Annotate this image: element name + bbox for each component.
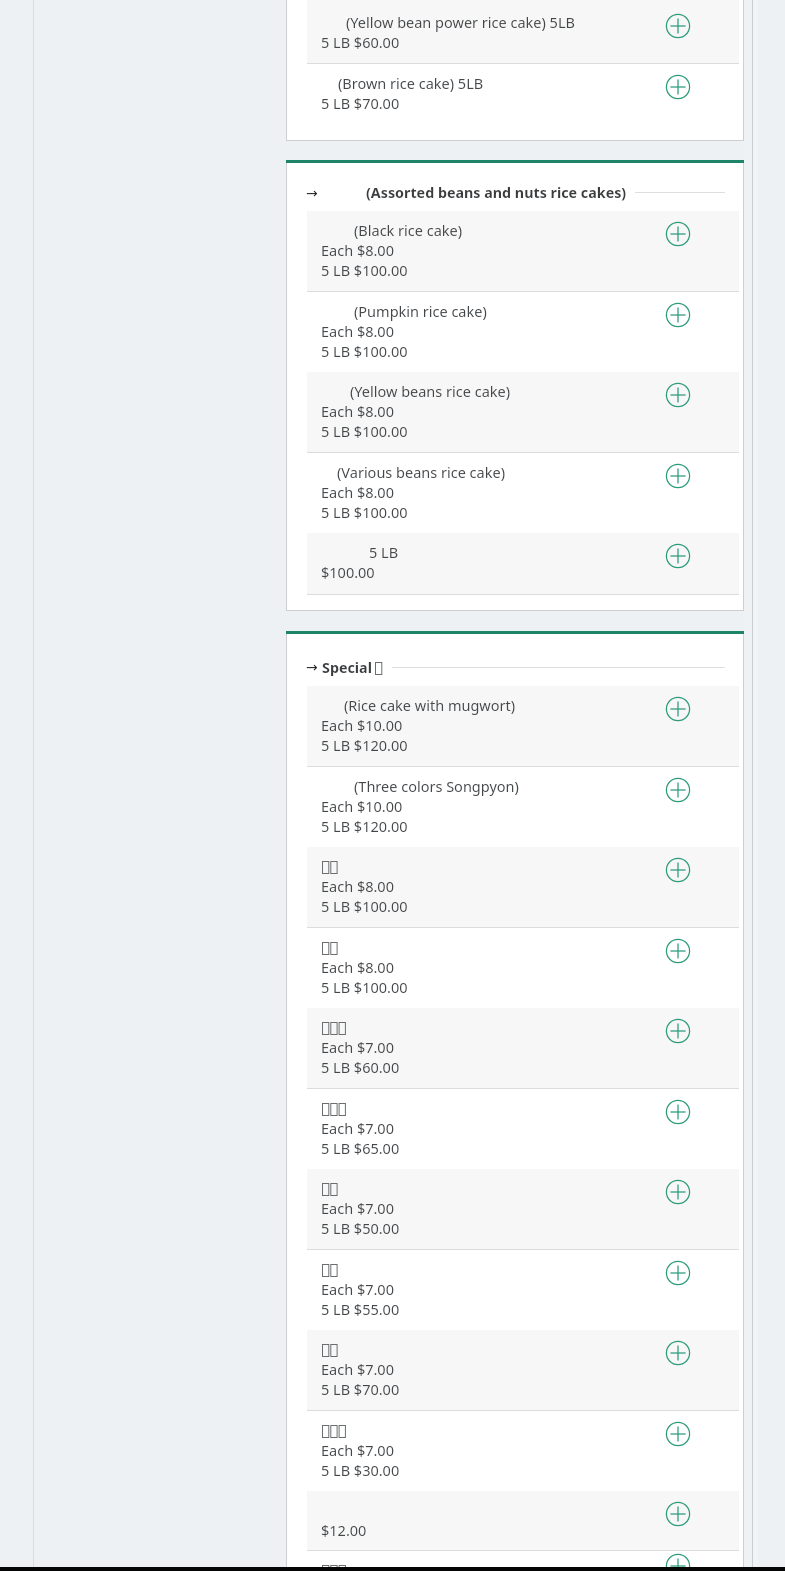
staticText: 5 LB $50.00 [321, 1218, 400, 1238]
staticText: 5 LB $65.00 [321, 1138, 400, 1158]
staticText: 5 LB $100.00 [321, 502, 408, 522]
staticText: Each $7.00 [321, 1359, 394, 1379]
button[interactable]: Each $7.00 [307, 1169, 739, 1249]
staticText: (Assorted beans and nuts rice cakes) [366, 183, 627, 202]
button[interactable]: (Yellow beans rice cake) [307, 372, 739, 452]
staticText: 5 LB [369, 542, 399, 562]
staticText: (Pumpkin rice cake) [354, 301, 487, 321]
staticText: (Yellow bean power rice cake) 5LB [346, 12, 575, 32]
button[interactable]: Each $7.00 [307, 1411, 739, 1491]
staticText: Each $8.00 [321, 482, 394, 502]
staticText: 5 LB $70.00 [321, 93, 400, 113]
button[interactable]: Add to order [665, 13, 691, 39]
staticText: 5 LB $55.00 [321, 1299, 400, 1319]
staticText: (Various beans rice cake) [337, 462, 505, 482]
button[interactable]: Add to order [665, 696, 691, 722]
button[interactable]: Add to order [665, 463, 691, 489]
staticText: Each $7.00 [321, 1118, 394, 1138]
button[interactable]: (Pumpkin rice cake) [307, 292, 739, 372]
staticText: Each $10.00 [321, 715, 403, 735]
button[interactable]: (Rice cake with mugwort) [307, 686, 739, 766]
button[interactable]: Add to order [665, 1561, 691, 1571]
staticText: 5 LB $60.00 [321, 1057, 400, 1077]
staticText: Each $8.00 [321, 876, 394, 896]
button[interactable]: Add to order [665, 1421, 691, 1447]
button[interactable]: 5 LB [307, 533, 739, 594]
staticText: Each $7.00 [321, 1440, 394, 1460]
staticText: → [306, 185, 318, 201]
staticText: 5 LB $100.00 [321, 896, 408, 916]
button[interactable]: (Three colors Songpyon) [307, 767, 739, 847]
button[interactable]: Each $7.00 [307, 1089, 739, 1169]
button[interactable]: → [287, 634, 743, 686]
staticText: 5 LB $100.00 [321, 977, 408, 997]
staticText: (Black rice cake) [354, 220, 463, 240]
staticText: 5 LB $120.00 [321, 816, 408, 836]
staticText: Each $7.00 [321, 1198, 394, 1218]
button[interactable]: Add to order [665, 1260, 691, 1286]
staticText: Each $10.00 [321, 796, 403, 816]
button[interactable]: → [287, 163, 743, 211]
button[interactable]: (Various beans rice cake) [307, 453, 739, 533]
button[interactable]: Add to order [665, 543, 691, 569]
button[interactable]: Add to order [665, 1179, 691, 1205]
button[interactable]: Add to order [665, 777, 691, 803]
button[interactable]: Each $8.00 [307, 928, 739, 1008]
button[interactable]: Add to order [665, 1018, 691, 1044]
staticText: 5 LB $120.00 [321, 735, 408, 755]
staticText: Each $8.00 [321, 957, 394, 977]
button[interactable]: (Black rice cake) [307, 211, 739, 291]
staticText: (Rice cake with mugwort) [344, 695, 516, 715]
staticText: Each $8.00 [321, 240, 394, 260]
staticText: (Yellow beans rice cake) [350, 381, 511, 401]
staticText: → [306, 659, 318, 675]
button[interactable]: Add to order [665, 302, 691, 328]
staticText: Each $7.00 [321, 1037, 394, 1057]
staticText: 5 LB $60.00 [321, 32, 400, 52]
staticText: 5 LB $100.00 [321, 341, 408, 361]
staticText: 5 LB $30.00 [321, 1460, 400, 1480]
button[interactable]: Add to order [665, 221, 691, 247]
button[interactable]: Each $7.00 [307, 1551, 739, 1571]
staticText: Special [322, 658, 372, 677]
button[interactable]: Each $7.00 [307, 1008, 739, 1088]
button[interactable]: Add to order [665, 74, 691, 100]
staticText: Each $7.00 [321, 1279, 394, 1299]
staticText: 5 LB $100.00 [321, 260, 408, 280]
button[interactable]: Add to order [665, 938, 691, 964]
button[interactable]: (Brown rice cake) 5LB [307, 64, 739, 125]
button[interactable]: Each $8.00 [307, 847, 739, 927]
staticText: (Brown rice cake) 5LB [338, 73, 484, 93]
button[interactable]: Add to order [665, 857, 691, 883]
button[interactable]: Each $7.00 [307, 1250, 739, 1330]
staticText: Each $8.00 [321, 401, 394, 421]
button[interactable]: (Yellow bean power rice cake) 5LB [307, 0, 739, 63]
staticText: $12.00 [321, 1520, 367, 1540]
staticText: 5 LB $100.00 [321, 421, 408, 441]
button[interactable]: Add to order [665, 1099, 691, 1125]
button[interactable]: Each $7.00 [307, 1330, 739, 1410]
button[interactable]: Add to order [665, 1501, 691, 1527]
staticText: (Three colors Songpyon) [354, 776, 519, 796]
staticText: Each $8.00 [321, 321, 394, 341]
button[interactable]: $12.00 [307, 1491, 739, 1550]
button[interactable]: Add to order [665, 382, 691, 408]
staticText: $100.00 [321, 562, 375, 582]
button[interactable]: Add to order [665, 1340, 691, 1366]
staticText: 5 LB $70.00 [321, 1379, 400, 1399]
